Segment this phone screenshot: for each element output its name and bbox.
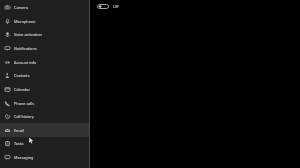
staticText: Phone calls <box>14 101 35 106</box>
staticText: Contacts <box>14 73 30 78</box>
staticText: Off <box>113 4 119 9</box>
button[interactable]: Calendar <box>0 82 89 96</box>
staticText: Calendar <box>14 87 31 92</box>
button[interactable]: Microphone <box>0 14 89 28</box>
staticText: Account info <box>14 60 37 65</box>
button[interactable]: Tasks <box>0 136 89 150</box>
button[interactable]: Camera <box>0 0 89 14</box>
staticText: Microphone <box>14 19 36 24</box>
button[interactable]: Phone calls <box>0 96 89 110</box>
staticText: Email <box>14 128 24 133</box>
button[interactable]: Voice activation <box>0 27 89 41</box>
staticText: Camera <box>14 5 28 10</box>
staticText: Tasks <box>14 141 24 146</box>
button[interactable]: Call history <box>0 109 89 123</box>
button[interactable]: Email <box>0 123 89 137</box>
staticText: Call history <box>14 114 34 119</box>
button[interactable]: Messaging <box>0 150 89 164</box>
staticText: Notifications <box>14 46 37 51</box>
button[interactable]: Contacts <box>0 68 89 82</box>
button[interactable]: Notifications <box>0 41 89 55</box>
button[interactable]: Account info <box>0 55 89 69</box>
button[interactable]: Toggle off <box>97 4 109 9</box>
staticText: Messaging <box>14 155 34 160</box>
staticText: Voice activation <box>14 32 42 37</box>
